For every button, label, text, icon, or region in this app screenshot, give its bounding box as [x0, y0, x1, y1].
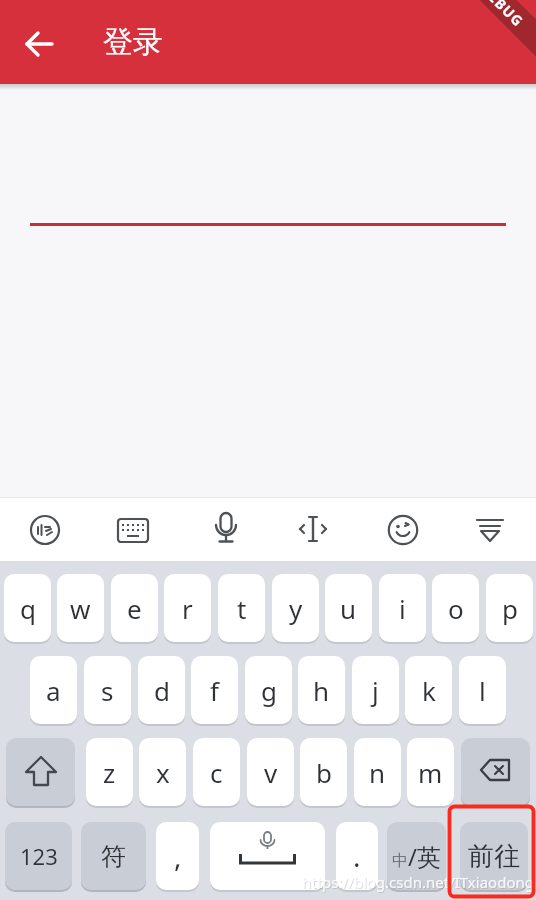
button[interactable]: m	[407, 738, 454, 806]
staticText: l	[479, 673, 486, 708]
staticText: p	[502, 591, 518, 626]
button[interactable]: x	[139, 738, 186, 806]
button[interactable]	[208, 511, 244, 547]
staticText: d	[154, 673, 170, 708]
staticText: w	[70, 591, 91, 626]
button[interactable]: n	[354, 738, 401, 806]
staticText: r	[182, 591, 193, 626]
button[interactable]: .	[336, 822, 378, 890]
button[interactable]: r	[164, 574, 211, 642]
button[interactable]: o	[432, 574, 479, 642]
staticText: 123	[20, 841, 58, 871]
staticText: x	[156, 755, 170, 790]
button[interactable]: e	[111, 574, 158, 642]
staticText: v	[264, 755, 278, 790]
staticText: DEBUG	[477, 0, 528, 31]
button[interactable]	[30, 515, 60, 545]
button[interactable]: t	[218, 574, 265, 642]
button[interactable]: i	[379, 574, 426, 642]
button[interactable]: y	[272, 574, 319, 642]
staticText: https://blog.csdn.net/ITxiaodong	[303, 873, 535, 893]
staticText: https://blog.csdn.net/ITxiaodong	[302, 872, 534, 892]
button[interactable]	[117, 515, 149, 547]
button[interactable]: 123	[5, 822, 72, 890]
staticText: j	[372, 673, 379, 708]
button[interactable]: 前往	[460, 822, 528, 890]
staticText: 登录	[103, 23, 163, 61]
button[interactable]: a	[30, 656, 77, 724]
staticText: ,	[174, 837, 182, 875]
button[interactable]: d	[138, 656, 185, 724]
staticText: 中/英	[392, 840, 441, 873]
staticText: c	[210, 755, 223, 790]
button[interactable]: q	[4, 574, 51, 642]
button[interactable]	[461, 738, 530, 806]
staticText: b	[316, 755, 332, 790]
button[interactable]	[210, 822, 325, 890]
button[interactable]	[388, 515, 418, 545]
staticText: 符	[101, 841, 126, 872]
staticText: q	[20, 591, 36, 626]
staticText: t	[237, 591, 247, 626]
button[interactable]: 中/英	[387, 822, 446, 890]
staticText: e	[127, 591, 142, 626]
staticText: z	[103, 755, 116, 790]
button[interactable]: b	[300, 738, 347, 806]
staticText: i	[399, 591, 406, 626]
button[interactable]: v	[247, 738, 294, 806]
staticText: y	[289, 591, 303, 626]
button[interactable]	[6, 738, 75, 806]
staticText: u	[340, 591, 357, 626]
button[interactable]: f	[191, 656, 238, 724]
button[interactable]: j	[352, 656, 399, 724]
button[interactable]: s	[84, 656, 131, 724]
button[interactable]: p	[486, 574, 533, 642]
button[interactable]: ,	[156, 822, 199, 890]
staticText: .	[353, 837, 361, 875]
staticText: a	[46, 673, 61, 708]
button[interactable]: 符	[81, 822, 146, 890]
button[interactable]: c	[193, 738, 240, 806]
staticText: f	[210, 673, 219, 708]
button[interactable]	[297, 514, 329, 546]
staticText: s	[101, 673, 114, 708]
button[interactable]: w	[57, 574, 104, 642]
button[interactable]	[24, 28, 56, 60]
staticText: 前往	[468, 840, 520, 873]
staticText: k	[422, 673, 436, 708]
button[interactable]: k	[405, 656, 452, 724]
button[interactable]: u	[325, 574, 372, 642]
staticText: m	[418, 755, 443, 790]
staticText: o	[448, 591, 464, 626]
button[interactable]	[475, 515, 505, 545]
staticText: g	[261, 673, 277, 708]
button[interactable]: g	[245, 656, 292, 724]
staticText: h	[313, 673, 330, 708]
button[interactable]: z	[86, 738, 133, 806]
button[interactable]: l	[459, 656, 506, 724]
button[interactable]: h	[298, 656, 345, 724]
staticText: n	[369, 755, 386, 790]
